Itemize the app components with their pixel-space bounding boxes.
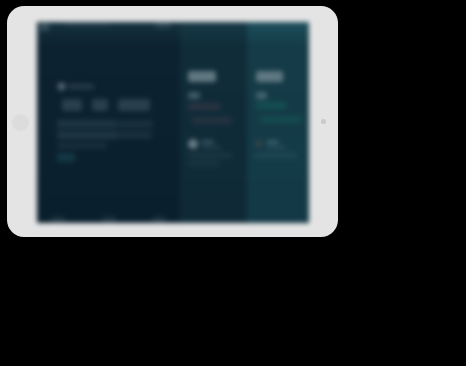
button[interactable]: Filter [256,71,283,82]
button[interactable]: Tab [152,216,166,223]
button[interactable]: Category [58,83,94,90]
button[interactable]: Filter [188,71,216,82]
button[interactable]: Tab [102,216,116,223]
button[interactable]: Learn more [57,153,75,162]
button[interactable]: Home [12,114,29,131]
button[interactable]: Tab [51,216,65,223]
